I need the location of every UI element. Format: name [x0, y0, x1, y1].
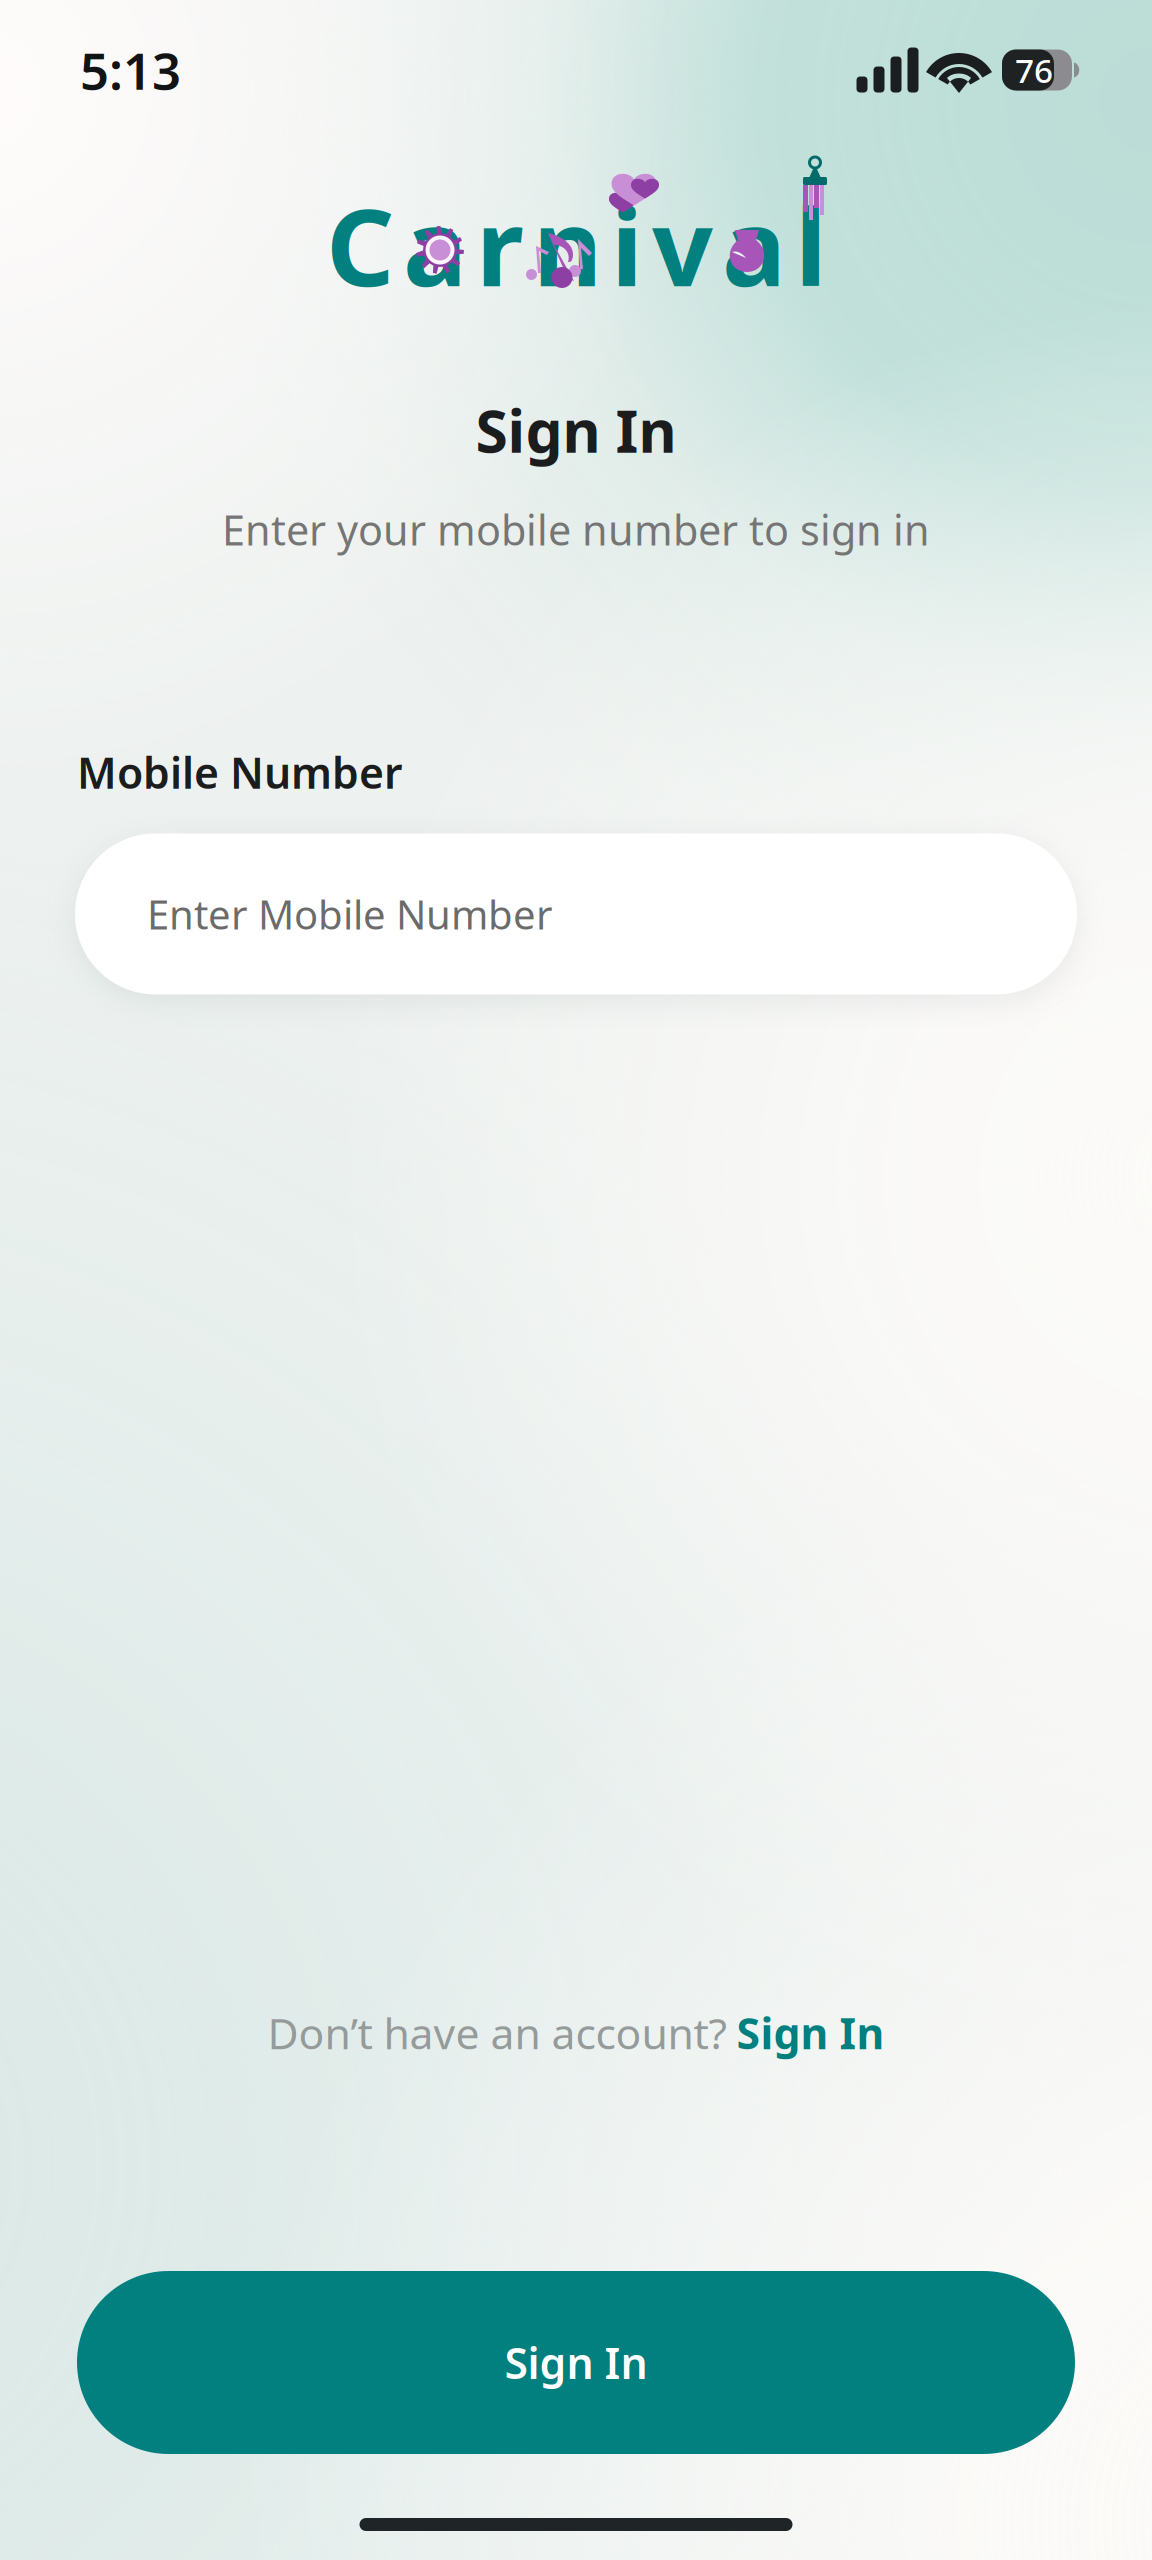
- button[interactable]: Sign In: [77, 2271, 1075, 2454]
- staticText: 76: [1015, 48, 1053, 92]
- staticText: Enter Mobile Number: [147, 887, 553, 940]
- staticText: Don’t have an account?: [267, 2004, 727, 2061]
- button[interactable]: Don’t have an account?: [267, 1998, 884, 2067]
- staticText: Sign In: [736, 2004, 884, 2061]
- staticText: Mobile Number: [77, 744, 403, 800]
- staticText: Carnival: [326, 174, 827, 316]
- staticText: Sign In: [504, 2334, 647, 2391]
- button[interactable]: Enter Mobile Number: [75, 833, 1077, 994]
- staticText: Sign In: [475, 391, 676, 469]
- staticText: 5:13: [80, 36, 181, 104]
- staticText: Enter your mobile number to sign in: [222, 502, 930, 557]
